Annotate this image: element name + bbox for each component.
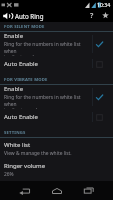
staticText: Auto Enable	[4, 113, 38, 121]
staticText: 10:34	[97, 1, 111, 8]
staticText: FOR SILENT MODE	[4, 24, 45, 30]
staticText: Ringer volume	[4, 162, 46, 170]
staticText: FOR VIBRATE MODE	[4, 77, 48, 83]
button[interactable]: Enable	[0, 32, 113, 56]
staticText: Auto Ring	[15, 12, 44, 20]
staticText: White list	[4, 141, 31, 149]
button[interactable]: White list	[0, 138, 113, 160]
staticText: Enable	[4, 85, 24, 93]
button[interactable]: Enable	[0, 85, 113, 109]
button[interactable]: Ringer volume	[0, 160, 113, 180]
staticText: View & manage the white list.	[4, 150, 72, 157]
staticText: ?	[90, 11, 94, 21]
button[interactable]: Help	[86, 10, 97, 21]
button[interactable]: Auto Enable	[0, 56, 113, 71]
button[interactable]: Auto Ring	[2, 10, 13, 21]
staticText: Ring for the numbers in white list when …	[4, 94, 89, 109]
staticText: 26%	[4, 171, 14, 178]
staticText: Ring for the numbers in white list when …	[4, 41, 89, 56]
button[interactable]: Rate this app	[100, 10, 111, 21]
button[interactable]: Auto Enable	[0, 109, 113, 125]
staticText: Auto Enable	[4, 60, 38, 68]
button[interactable]: Home	[41, 181, 73, 200]
button[interactable]: Back	[8, 181, 41, 200]
staticText: SETTINGS	[4, 130, 26, 136]
staticText: Enable	[4, 32, 24, 40]
button[interactable]: Recent apps	[73, 181, 105, 200]
